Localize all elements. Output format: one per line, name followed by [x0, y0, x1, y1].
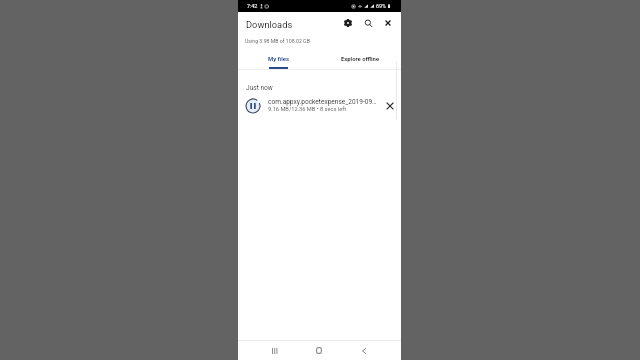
- button[interactable]: Home: [305, 341, 333, 360]
- staticText: 69%: [376, 3, 387, 9]
- button[interactable]: Just now: [246, 84, 273, 92]
- staticText: com.appxy.pocketexpense_2019-09…: [268, 98, 377, 106]
- button[interactable]: Search: [358, 13, 378, 33]
- button[interactable]: com.appxy.pocketexpense_2019-09…: [238, 94, 401, 117]
- staticText: 7:42: [247, 3, 258, 9]
- staticText: 9.16 MB/12.36 MB • 8 secs left: [268, 106, 346, 113]
- button[interactable]: Explore offline: [319, 48, 401, 69]
- button[interactable]: Recents: [260, 341, 288, 360]
- button[interactable]: My files: [238, 48, 319, 69]
- button[interactable]: Back: [350, 341, 378, 360]
- staticText: Downloads: [246, 19, 293, 30]
- staticText: Explore offline: [341, 56, 380, 63]
- staticText: Using 3.98 MB of 108.02 GB: [245, 38, 310, 44]
- button[interactable]: Close: [378, 13, 398, 33]
- staticText: My files: [268, 56, 289, 63]
- button[interactable]: Cancel download: [379, 94, 401, 117]
- button[interactable]: Settings: [338, 13, 358, 33]
